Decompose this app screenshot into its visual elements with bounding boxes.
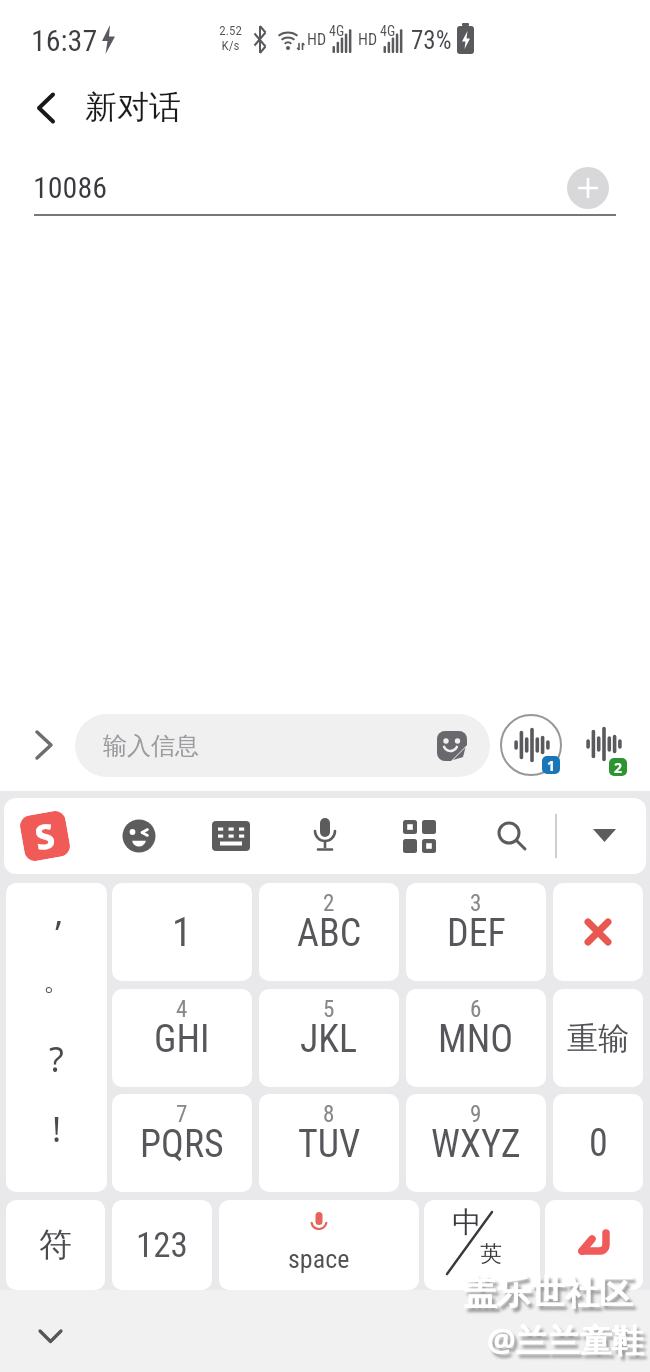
- staticText: HD: [307, 30, 327, 49]
- staticText: 。: [43, 963, 71, 998]
- staticText: 重输: [567, 1019, 629, 1058]
- button[interactable]: 8: [259, 1094, 399, 1192]
- button[interactable]: [302, 813, 348, 859]
- staticText: 新对话: [85, 87, 181, 127]
- staticText: 符: [39, 1224, 72, 1266]
- staticText: 1: [172, 909, 192, 956]
- button[interactable]: [588, 820, 620, 852]
- button[interactable]: 2: [259, 883, 399, 981]
- button[interactable]: 2: [574, 713, 636, 775]
- staticText: JKL: [300, 1017, 358, 1062]
- staticText: 16:37: [31, 23, 98, 58]
- button[interactable]: 1: [498, 712, 564, 778]
- button[interactable]: 重输: [553, 989, 643, 1087]
- staticText: !: [52, 1106, 62, 1152]
- button[interactable]: [24, 725, 64, 765]
- button[interactable]: ,: [6, 883, 107, 1192]
- button[interactable]: 符: [6, 1200, 105, 1290]
- button[interactable]: [20, 84, 72, 132]
- button[interactable]: 123: [112, 1200, 212, 1290]
- staticText: 2: [323, 890, 335, 917]
- staticText: 73%: [411, 26, 452, 55]
- staticText: ?: [49, 1036, 64, 1082]
- staticText: 2: [614, 758, 623, 776]
- staticText: S: [31, 812, 59, 860]
- staticText: 输入信息: [103, 731, 199, 761]
- staticText: 7: [176, 1101, 188, 1128]
- button[interactable]: 1: [112, 883, 252, 981]
- button[interactable]: [30, 1318, 70, 1354]
- button[interactable]: 3: [406, 883, 546, 981]
- staticText: 2.52 K/s: [219, 23, 242, 53]
- staticText: MNO: [438, 1017, 514, 1062]
- button[interactable]: 输入信息: [75, 714, 490, 777]
- button[interactable]: 9: [406, 1094, 546, 1192]
- staticText: GHI: [154, 1017, 210, 1062]
- button[interactable]: 中: [424, 1200, 540, 1290]
- button[interactable]: 7: [112, 1094, 252, 1192]
- staticText: 英: [480, 1240, 502, 1268]
- button[interactable]: 6: [406, 989, 546, 1087]
- staticText: WXYZ: [431, 1122, 521, 1167]
- button[interactable]: S: [18, 809, 72, 863]
- staticText: 0: [589, 1121, 608, 1166]
- staticText: TUV: [298, 1122, 361, 1167]
- staticText: 8: [323, 1101, 335, 1128]
- staticText: 10086: [33, 170, 108, 205]
- button[interactable]: [553, 883, 643, 981]
- staticText: ABC: [297, 911, 362, 956]
- button[interactable]: 4: [112, 989, 252, 1087]
- staticText: HD: [358, 30, 378, 49]
- staticText: 中: [452, 1204, 481, 1241]
- staticText: 5: [323, 996, 335, 1023]
- staticText: @兰兰童鞋: [487, 1318, 644, 1362]
- staticText: 1: [547, 756, 556, 774]
- staticText: 4: [176, 996, 188, 1023]
- staticText: 盖乐世社区: [463, 1271, 633, 1314]
- button[interactable]: 5: [259, 989, 399, 1087]
- staticText: 4G: [380, 23, 396, 39]
- button[interactable]: space: [219, 1200, 419, 1290]
- staticText: PQRS: [140, 1122, 224, 1167]
- staticText: 4G: [329, 23, 345, 39]
- staticText: ,: [54, 887, 64, 936]
- button[interactable]: [118, 815, 160, 857]
- button[interactable]: [208, 813, 254, 859]
- button[interactable]: 0: [553, 1094, 643, 1192]
- staticText: 123: [136, 1225, 188, 1266]
- button[interactable]: [489, 813, 535, 859]
- button[interactable]: [545, 1200, 643, 1290]
- staticText: DEF: [447, 911, 506, 956]
- button[interactable]: [396, 813, 442, 859]
- staticText: 3: [470, 890, 482, 917]
- staticText: 9: [470, 1101, 482, 1128]
- staticText: space: [288, 1244, 350, 1274]
- button[interactable]: [567, 167, 609, 209]
- staticText: 6: [470, 996, 482, 1023]
